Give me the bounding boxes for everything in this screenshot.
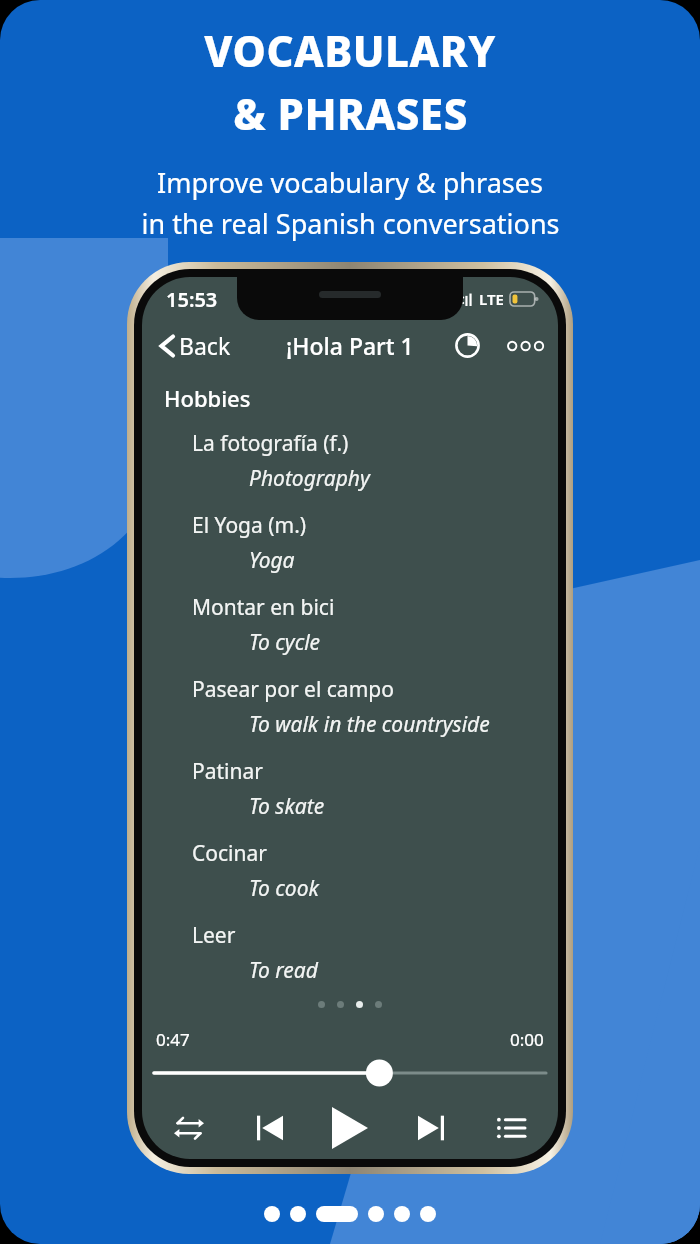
button[interactable]: El Yoga (m.) [142, 509, 558, 591]
staticText: LTE [479, 289, 504, 309]
button[interactable]: Page 1 [264, 1206, 280, 1222]
staticText: Yoga [249, 546, 295, 575]
staticText: Back [179, 330, 231, 361]
staticText: To cycle [249, 628, 321, 657]
button[interactable]: Pasear por el campo [142, 673, 558, 755]
button[interactable]: More options [502, 336, 544, 356]
button[interactable]: Previous [241, 1099, 299, 1157]
button[interactable]: Page 4 [368, 1206, 384, 1222]
button[interactable]: Progress [451, 329, 484, 362]
button[interactable]: Cocinar [142, 837, 558, 919]
staticText: Improve vocabulary & phrases [157, 164, 543, 201]
button[interactable]: Page 5 [394, 1206, 410, 1222]
staticText: El Yoga (m.) [192, 511, 307, 540]
button[interactable]: Playlist [482, 1099, 540, 1157]
staticText: Hobbies [164, 383, 251, 413]
staticText: La fotografía (f.) [192, 429, 349, 458]
button[interactable]: La fotografía (f.) [142, 427, 558, 509]
staticText: Cocinar [192, 839, 267, 868]
staticText: 15:53 [166, 286, 218, 313]
staticText: To walk in the countryside [249, 710, 490, 739]
staticText: in the real Spanish conversations [141, 205, 560, 242]
button[interactable]: Next [402, 1099, 460, 1157]
staticText: To skate [249, 792, 325, 821]
staticText: Pasear por el campo [192, 675, 394, 704]
button[interactable]: Montar en bici [142, 591, 558, 673]
button[interactable]: Play [321, 1099, 379, 1157]
staticText: To read [249, 956, 318, 985]
staticText: VOCABULARY [204, 22, 496, 79]
button[interactable]: Repeat [160, 1099, 218, 1157]
staticText: Photography [249, 464, 370, 493]
button[interactable]: Page 3 [316, 1206, 358, 1222]
staticText: To cook [249, 874, 319, 903]
button[interactable]: Back [156, 326, 235, 365]
staticText: & PHRASES [233, 85, 468, 142]
staticText: 0:00 [510, 1028, 544, 1051]
staticText: Montar en bici [192, 593, 335, 622]
staticText: Leer [192, 921, 236, 950]
staticText: 0:47 [156, 1028, 190, 1051]
button[interactable]: Patinar [142, 755, 558, 837]
button[interactable]: Leer [142, 919, 558, 1001]
staticText: Patinar [192, 757, 263, 786]
button[interactable]: Page 2 [290, 1206, 306, 1222]
staticText: ¡Hola Part 1 [286, 330, 414, 361]
button[interactable]: Seek bar [142, 1061, 558, 1085]
button[interactable]: Page 6 [420, 1206, 436, 1222]
